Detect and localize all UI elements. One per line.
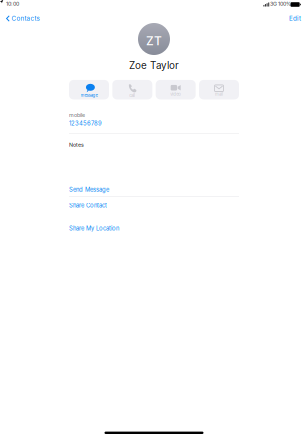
staticText: Share Contact xyxy=(69,202,107,209)
staticText: 123456789 xyxy=(69,120,102,127)
staticText: 3G xyxy=(270,1,277,7)
staticText: Notes xyxy=(69,141,84,148)
staticText: message xyxy=(80,93,97,98)
staticText: Contacts xyxy=(12,15,40,22)
button[interactable]: Send Message xyxy=(69,183,239,196)
button[interactable]: Share My Location xyxy=(69,220,239,237)
staticText: mobile xyxy=(69,112,85,118)
button[interactable]: Share Contact xyxy=(69,197,239,214)
button[interactable]: call xyxy=(112,80,152,99)
staticText: 10:00 xyxy=(6,1,19,7)
staticText: Share My Location xyxy=(69,225,119,232)
staticText: 100% xyxy=(278,1,291,7)
button[interactable]: message xyxy=(69,80,109,99)
button[interactable]: video xyxy=(156,80,196,99)
staticText: video xyxy=(170,92,181,97)
button[interactable]: Edit xyxy=(286,13,304,24)
button[interactable]: Contacts xyxy=(4,13,42,24)
staticText: ZT xyxy=(146,33,162,48)
staticText: call xyxy=(129,93,135,98)
staticText: Send Message xyxy=(69,186,109,193)
staticText: mail xyxy=(215,92,223,97)
button[interactable]: 123456789 xyxy=(69,120,239,127)
staticText: Edit xyxy=(289,15,301,22)
staticText: Zoe Taylor xyxy=(129,59,179,71)
button[interactable]: mail xyxy=(199,80,239,99)
